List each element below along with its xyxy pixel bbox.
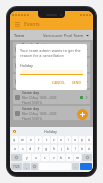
staticText: l <box>75 146 76 151</box>
staticText: g <box>45 146 48 151</box>
staticText: CANCEL <box>52 80 65 85</box>
button[interactable]: v <box>50 154 57 161</box>
staticText: Mon 12 Aug 18:00 – 20:00 <box>22 64 57 68</box>
button[interactable]: Shift <box>11 154 22 161</box>
button[interactable]: Regular Training <box>13 42 90 56</box>
button[interactable]: z <box>51 136 57 143</box>
button[interactable]: Add event <box>77 109 88 120</box>
staticText: . <box>75 165 76 169</box>
button[interactable]: o <box>72 136 78 143</box>
button[interactable]: Holiday <box>42 129 60 134</box>
staticText: x <box>35 155 37 160</box>
staticText: c <box>44 155 46 160</box>
button[interactable]: r <box>35 136 42 143</box>
staticText: q <box>13 137 16 142</box>
staticText: ?123 <box>13 165 20 169</box>
staticText: o <box>74 137 77 142</box>
button[interactable]: b <box>58 154 65 161</box>
button[interactable]: Backspace <box>82 154 92 161</box>
staticText: ü <box>88 137 91 142</box>
button[interactable]: i <box>65 136 71 143</box>
staticText: Mon 12 Aug 18:00 – 20:00 <box>22 112 57 116</box>
staticText: Mon 12 Aug 18:00 – 20:00 <box>22 80 57 84</box>
button[interactable]: Game day <box>13 90 90 104</box>
button[interactable]: h <box>51 145 57 152</box>
button[interactable]: j <box>58 145 64 152</box>
staticText: w <box>21 137 24 142</box>
staticText: , <box>26 165 27 169</box>
staticText: z <box>53 137 55 142</box>
button[interactable]: Enter <box>80 163 92 170</box>
button[interactable]: Regular Training <box>13 74 90 88</box>
staticText: Your team admin wants to get the reason … <box>20 48 83 58</box>
staticText: Game day <box>22 106 40 111</box>
staticText: Regular Training <box>22 74 51 79</box>
button[interactable]: x <box>32 154 40 161</box>
staticText: Played 10/20 % <box>22 101 42 104</box>
button[interactable]: Regular Training <box>13 58 90 72</box>
button[interactable]: Google keyboard options <box>12 129 16 133</box>
button[interactable]: w <box>19 136 26 143</box>
button[interactable]: ü <box>86 136 92 143</box>
staticText: k <box>67 146 69 151</box>
button[interactable]: ä <box>86 145 92 152</box>
staticText: y <box>26 155 28 160</box>
staticText: ö <box>81 146 84 151</box>
staticText: u <box>60 137 63 142</box>
staticText: n <box>68 155 71 160</box>
button[interactable]: c <box>41 154 49 161</box>
button[interactable]: y <box>23 154 31 161</box>
button[interactable]: SEND <box>70 79 83 86</box>
button[interactable]: Team <box>10 30 93 40</box>
button[interactable]: p <box>79 136 85 143</box>
staticText: Holiday <box>44 129 58 134</box>
staticText: Events <box>24 21 40 28</box>
button[interactable]: f <box>35 145 42 152</box>
button[interactable]: s <box>19 145 26 152</box>
button[interactable]: t <box>43 136 50 143</box>
staticText: j <box>61 146 62 151</box>
staticText: a <box>14 146 16 151</box>
button[interactable]: e <box>27 136 34 143</box>
staticText: Game day <box>22 90 40 95</box>
button[interactable]: k <box>65 145 71 152</box>
staticText: Mon 12 Aug 18:00 – 20:00 <box>22 48 57 52</box>
button[interactable]: ?123 <box>11 163 22 170</box>
staticText: d <box>29 146 32 151</box>
staticText: Team <box>14 33 25 38</box>
staticText: m <box>76 155 80 160</box>
staticText: Played 10/20 % <box>22 117 42 120</box>
button[interactable]: Game day <box>13 106 90 120</box>
staticText: e <box>30 137 32 142</box>
button[interactable]: CANCEL <box>50 79 67 86</box>
button[interactable]: l <box>72 145 78 152</box>
staticText: b <box>60 155 63 160</box>
button[interactable]: d <box>27 145 34 152</box>
staticText: v <box>53 155 55 160</box>
staticText: p <box>81 137 84 142</box>
staticText: t <box>46 137 48 142</box>
staticText: s <box>22 146 24 151</box>
staticText: ä <box>88 146 90 151</box>
staticText: Played 10/20 % <box>22 69 42 72</box>
staticText: i <box>68 137 69 142</box>
staticText: h <box>53 146 56 151</box>
button[interactable]: n <box>66 154 73 161</box>
button[interactable]: Open navigation menu <box>13 20 22 29</box>
button[interactable]: u <box>58 136 64 143</box>
staticText: Vancouver Pool Team <box>43 33 84 38</box>
staticText: Played 10/20 % <box>22 53 42 56</box>
button[interactable]: m <box>74 154 81 161</box>
staticText: f <box>38 146 40 151</box>
button[interactable]: Emoji <box>31 163 38 170</box>
button[interactable]: , <box>23 163 30 170</box>
button[interactable]: g <box>43 145 50 152</box>
button[interactable]: q <box>11 136 18 143</box>
button[interactable]: . <box>72 163 79 170</box>
button[interactable]: ö <box>79 145 85 152</box>
button[interactable]: a <box>11 145 18 152</box>
